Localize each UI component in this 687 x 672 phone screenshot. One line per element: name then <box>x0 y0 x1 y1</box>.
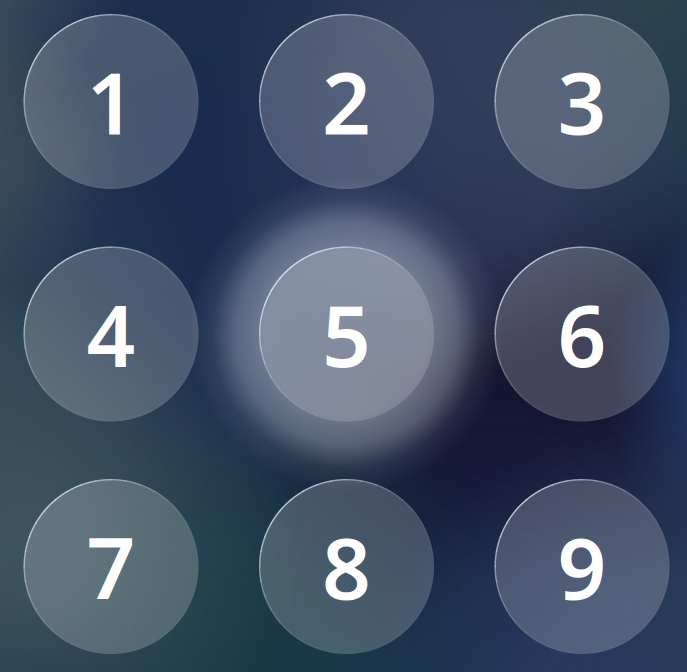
staticText: 8 <box>322 510 371 623</box>
button[interactable]: 5 <box>259 246 434 421</box>
staticText: 6 <box>557 277 606 391</box>
button[interactable]: 8 <box>259 479 434 654</box>
staticText: 5 <box>322 277 371 391</box>
staticText: 7 <box>86 510 135 623</box>
staticText: 3 <box>557 45 606 158</box>
staticText: 9 <box>557 510 606 623</box>
staticText: 4 <box>86 277 135 391</box>
button[interactable]: 9 <box>494 479 669 654</box>
staticText: 1 <box>86 45 135 158</box>
button[interactable]: 2 <box>259 14 434 189</box>
button[interactable]: 6 <box>494 246 669 421</box>
button[interactable]: 1 <box>23 14 198 189</box>
button[interactable]: 4 <box>23 246 198 421</box>
button[interactable]: 3 <box>494 14 669 189</box>
button[interactable]: 7 <box>23 479 198 654</box>
staticText: 2 <box>322 45 371 158</box>
